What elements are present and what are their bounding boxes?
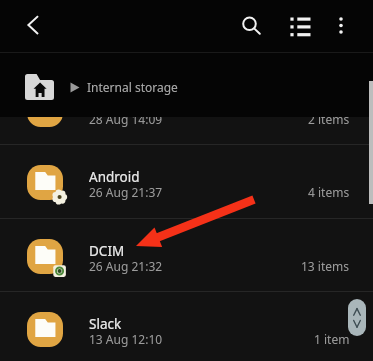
staticText: 13 Aug 12:10: [89, 331, 163, 347]
button[interactable]: Back: [11, 3, 55, 47]
button[interactable]: Internal storage: [25, 74, 178, 100]
staticText: Internal storage: [87, 79, 178, 95]
button[interactable]: Search: [227, 1, 271, 45]
button[interactable]: Slack: [0, 291, 373, 361]
staticText: 4 items: [308, 184, 350, 200]
staticText: Android: [89, 168, 140, 186]
button[interactable]: DCIM: [0, 218, 373, 292]
staticText: 1 item: [314, 331, 350, 347]
staticText: 28 Aug 14:09: [89, 111, 163, 127]
staticText: 13 items: [301, 258, 350, 274]
staticText: DCIM: [89, 242, 125, 260]
button[interactable]: More options: [319, 3, 363, 47]
button[interactable]: View as list: [278, 3, 322, 47]
staticText: 2 items: [308, 111, 350, 127]
staticText: 26 Aug 21:32: [89, 258, 163, 274]
staticText: Slack: [89, 315, 122, 333]
button[interactable]: Android: [0, 144, 373, 218]
button[interactable]: Scroll: [348, 299, 366, 336]
staticText: 26 Aug 21:37: [89, 184, 163, 200]
button[interactable]: Pictures: [0, 71, 373, 145]
